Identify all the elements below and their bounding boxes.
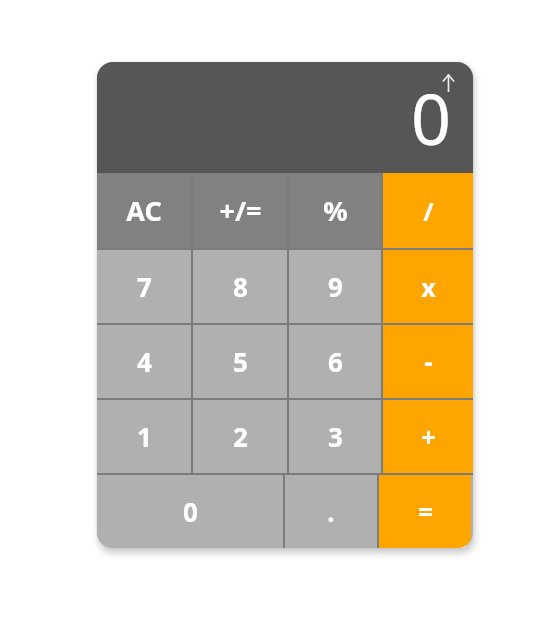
staticText: 1 xyxy=(137,419,152,454)
staticText: = xyxy=(418,494,433,529)
button[interactable]: x xyxy=(383,250,473,323)
button[interactable]: 0 xyxy=(97,475,283,548)
button[interactable]: = xyxy=(379,475,471,548)
staticText: - xyxy=(424,344,433,379)
staticText: 0 xyxy=(183,494,198,529)
staticText: 3 xyxy=(328,419,343,454)
staticText: 8 xyxy=(233,269,248,304)
staticText: 0 xyxy=(410,70,451,165)
button[interactable]: 9 xyxy=(289,250,381,323)
button[interactable]: . xyxy=(285,475,377,548)
button[interactable]: - xyxy=(383,325,473,398)
button[interactable]: Scroll history up xyxy=(442,73,455,93)
button[interactable]: 6 xyxy=(289,325,381,398)
staticText: x xyxy=(421,270,436,304)
button[interactable]: 4 xyxy=(97,325,191,398)
button[interactable]: 8 xyxy=(193,250,287,323)
staticText: / xyxy=(423,194,434,228)
button[interactable]: 5 xyxy=(193,325,287,398)
staticText: 4 xyxy=(137,344,152,379)
staticText: AC xyxy=(126,192,162,229)
button[interactable]: + xyxy=(383,400,473,473)
staticText: 7 xyxy=(137,269,152,304)
button[interactable]: 7 xyxy=(97,250,191,323)
staticText: % xyxy=(323,192,348,229)
staticText: + xyxy=(421,419,436,454)
button[interactable]: 3 xyxy=(289,400,381,473)
button[interactable]: / xyxy=(383,173,473,248)
button[interactable]: % xyxy=(289,173,381,248)
staticText: 6 xyxy=(328,344,343,379)
staticText: +/= xyxy=(219,192,262,229)
button[interactable]: 1 xyxy=(97,400,191,473)
button[interactable]: AC xyxy=(97,173,191,248)
staticText: 2 xyxy=(233,419,248,454)
staticText: . xyxy=(327,494,335,529)
staticText: 9 xyxy=(328,269,343,304)
button[interactable]: 2 xyxy=(193,400,287,473)
button[interactable]: +/= xyxy=(193,173,287,248)
staticText: 5 xyxy=(233,344,248,379)
